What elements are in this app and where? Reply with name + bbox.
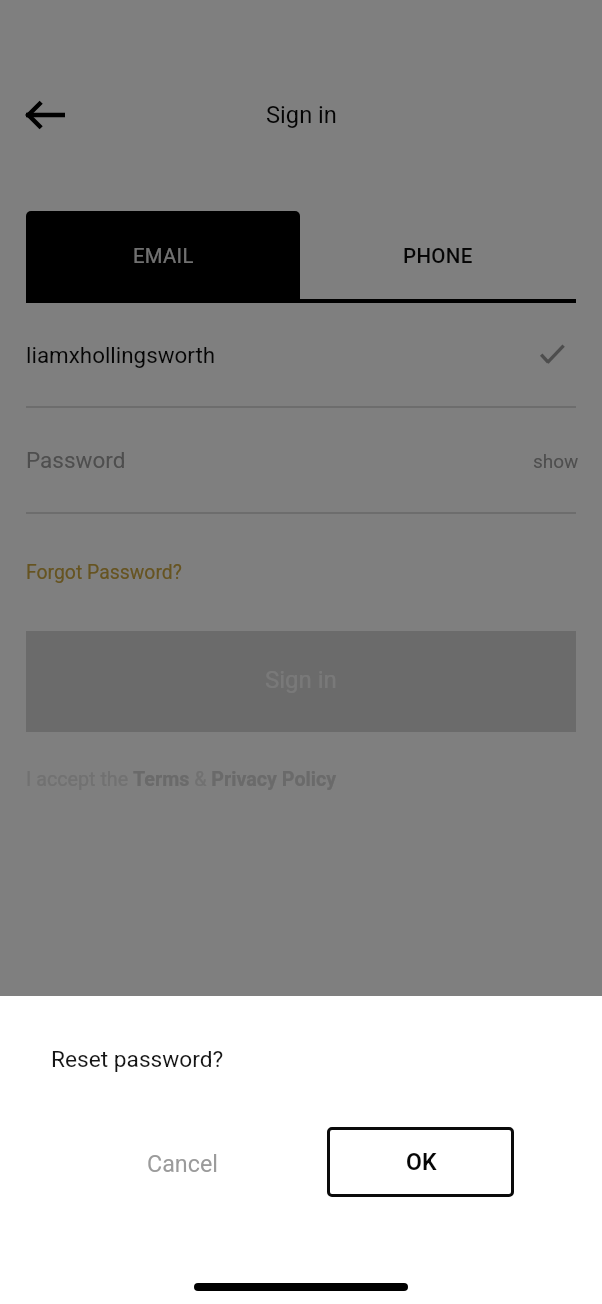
- staticText: Cancel: [147, 1150, 218, 1177]
- button[interactable]: Back: [2, 91, 50, 139]
- button[interactable]: EMAIL: [26, 211, 300, 303]
- staticText: PHONE: [403, 244, 473, 268]
- staticText: I accept the Terms & Privacy Policy: [26, 768, 337, 791]
- button[interactable]: Password: [26, 440, 576, 480]
- staticText: EMAIL: [133, 244, 194, 268]
- staticText: Reset password?: [51, 1046, 224, 1073]
- button[interactable]: Forgot Password?: [26, 561, 182, 584]
- button[interactable]: liamxhollingsworth: [26, 332, 576, 378]
- staticText: Password: [26, 447, 126, 473]
- other: Valid: [532, 331, 580, 377]
- staticText: Forgot Password?: [26, 561, 182, 584]
- staticText: liamxhollingsworth: [26, 342, 216, 368]
- button[interactable]: show: [533, 450, 579, 472]
- staticText: Sign in: [265, 666, 337, 694]
- button[interactable]: I accept the Terms & Privacy Policy: [26, 768, 337, 791]
- button[interactable]: OK: [327, 1127, 514, 1197]
- button[interactable]: PHONE: [300, 211, 576, 303]
- staticText: OK: [406, 1149, 437, 1176]
- staticText: Sign in: [266, 101, 337, 129]
- staticText: show: [533, 450, 579, 472]
- button[interactable]: Cancel: [124, 1134, 240, 1192]
